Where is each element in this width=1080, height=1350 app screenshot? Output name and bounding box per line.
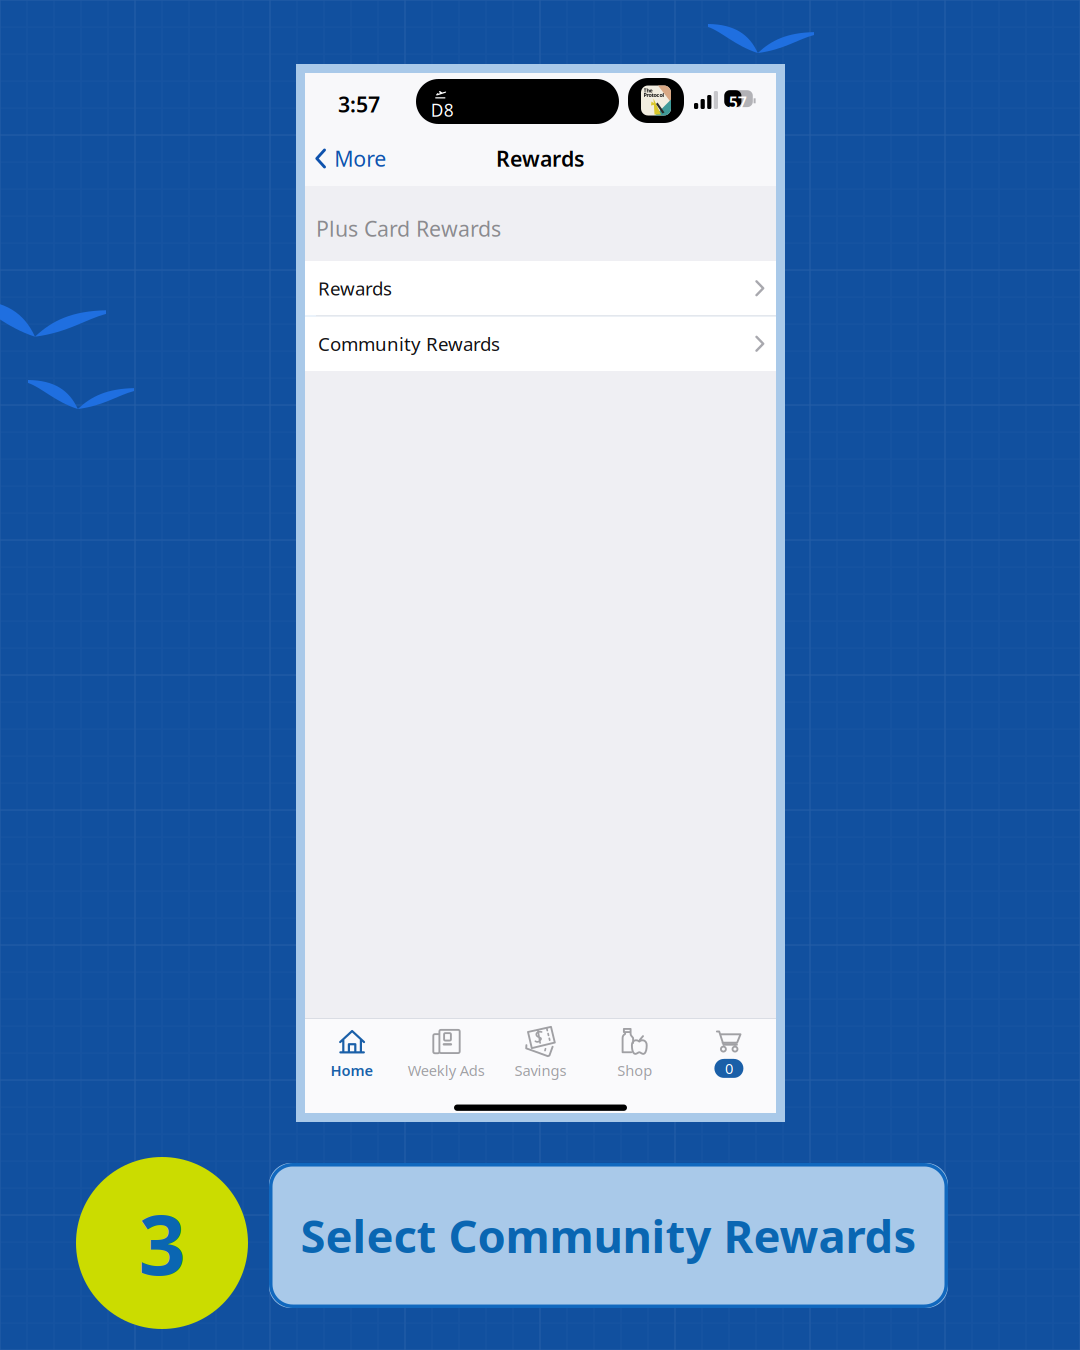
staticText: Select Community Rewards	[300, 1205, 916, 1266]
staticText: Savings	[514, 1060, 566, 1080]
button[interactable]: Shop	[588, 1018, 682, 1113]
button[interactable]: Cart	[682, 1019, 776, 1113]
button[interactable]: Rewards	[305, 261, 776, 315]
staticText: Community Rewards	[318, 331, 500, 356]
staticText: More	[334, 144, 386, 173]
staticText: Home	[331, 1060, 374, 1080]
staticText: Weekly Ads	[408, 1060, 485, 1080]
button[interactable]: Community Rewards	[305, 316, 776, 371]
button[interactable]: More	[305, 135, 392, 182]
button[interactable]: Weekly Ads	[399, 1018, 493, 1113]
staticText: Rewards	[496, 144, 585, 173]
staticText: Plus Card Rewards	[316, 214, 501, 243]
staticText: Protocol	[643, 91, 664, 99]
staticText: 57	[729, 92, 747, 113]
staticText: Shop	[617, 1060, 652, 1080]
button[interactable]: Home	[305, 1018, 399, 1113]
staticText: 3:57	[338, 90, 380, 118]
staticText: 0	[725, 1059, 733, 1078]
button[interactable]: Savings	[493, 1018, 588, 1113]
staticText: The	[643, 87, 652, 94]
staticText: 3	[138, 1188, 185, 1298]
staticText: D8	[431, 99, 454, 122]
staticText: Rewards	[318, 276, 392, 301]
